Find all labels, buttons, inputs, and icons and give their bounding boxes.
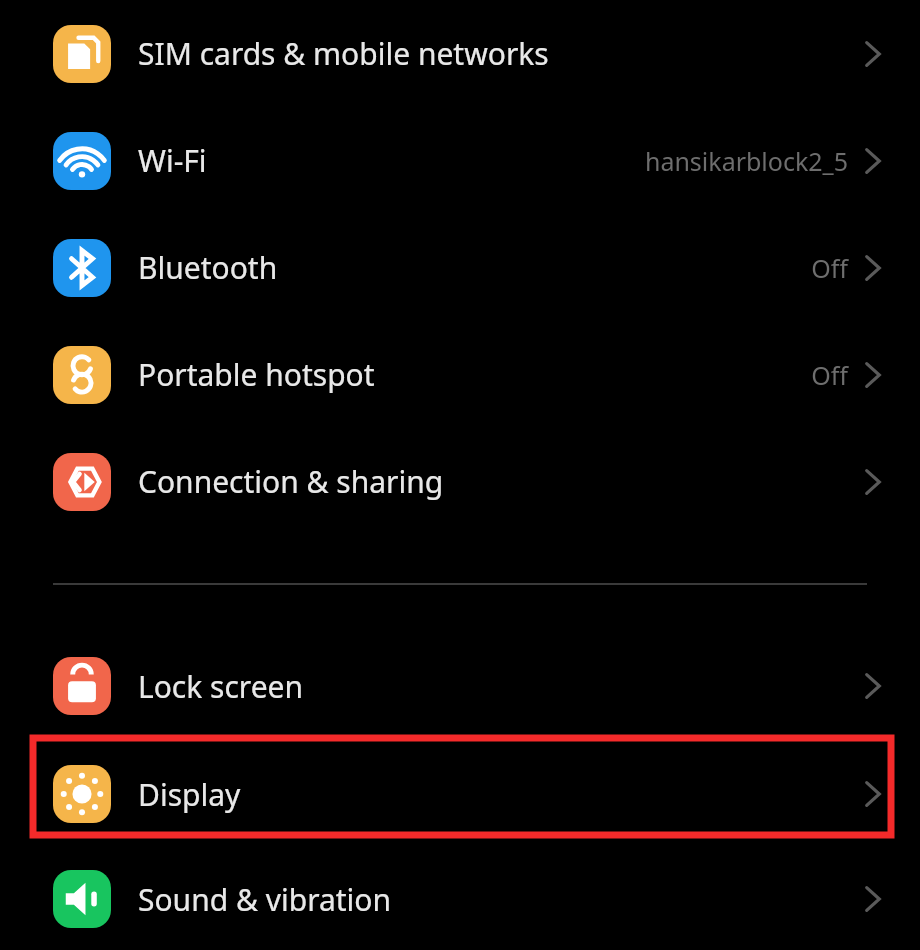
button[interactable]: Lock screen: [0, 632, 920, 740]
staticText: Display: [138, 774, 241, 815]
button[interactable]: SIM cards & mobile networks: [0, 0, 920, 107]
button[interactable]: Display: [0, 740, 920, 848]
staticText: Connection & sharing: [138, 461, 444, 502]
staticText: SIM cards & mobile networks: [138, 33, 549, 74]
staticText: Off: [811, 358, 848, 392]
button[interactable]: Bluetooth: [0, 214, 920, 321]
staticText: hansikarblock2_5: [644, 144, 848, 178]
staticText: Wi-Fi: [138, 140, 207, 181]
staticText: Bluetooth: [138, 247, 278, 288]
staticText: Portable hotspot: [138, 354, 375, 395]
button[interactable]: Wi-Fi: [0, 107, 920, 214]
button[interactable]: Sound & vibration: [0, 848, 920, 950]
staticText: Lock screen: [138, 666, 304, 707]
staticText: Off: [811, 251, 848, 285]
button[interactable]: Portable hotspot: [0, 321, 920, 428]
button[interactable]: Connection & sharing: [0, 428, 920, 535]
staticText: Sound & vibration: [138, 879, 392, 920]
